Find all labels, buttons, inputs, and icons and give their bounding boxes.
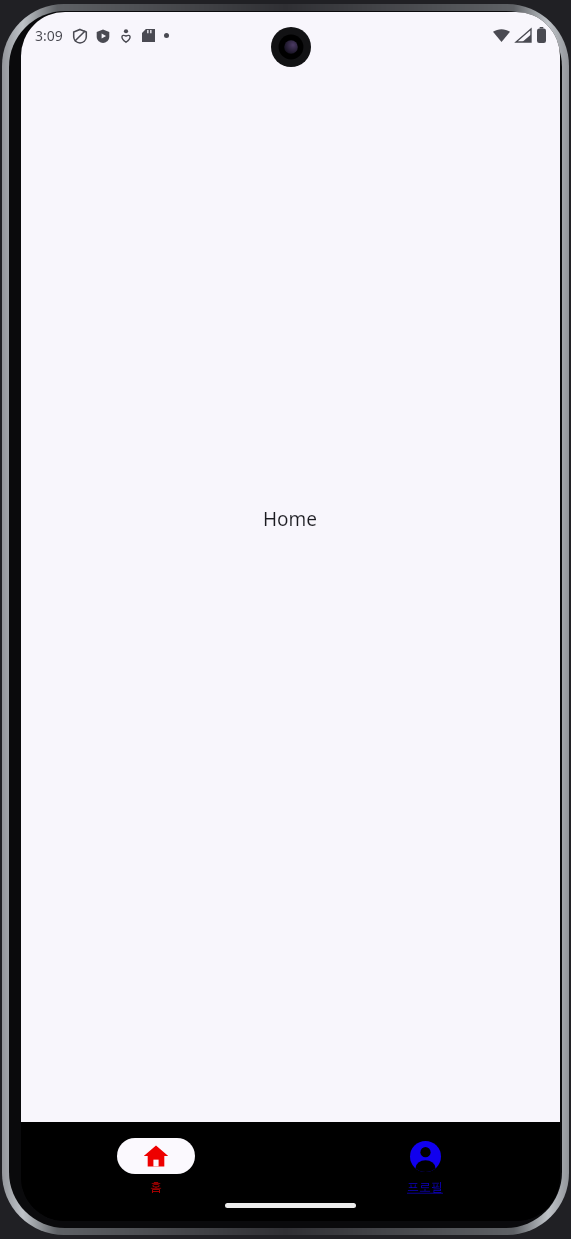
other: 프로필	[410, 1141, 441, 1172]
button[interactable]: 홈	[117, 1122, 195, 1194]
staticText: Home	[263, 506, 318, 532]
staticText: 3:09	[35, 26, 63, 45]
staticText: 프로필	[407, 1179, 443, 1194]
other: 홈	[143, 1143, 169, 1169]
staticText: 홈	[150, 1179, 162, 1194]
button[interactable]: 프로필	[386, 1122, 464, 1194]
